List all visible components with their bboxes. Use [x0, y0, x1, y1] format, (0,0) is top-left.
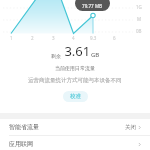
staticText: 1G: [136, 4, 142, 10]
button[interactable]: 校准: [63, 91, 88, 102]
staticText: M: [137, 16, 142, 22]
staticText: 2: [31, 35, 34, 41]
staticText: 3: [52, 35, 55, 41]
staticText: 剩余: [51, 53, 61, 59]
staticText: 1: [10, 35, 13, 41]
staticText: 9.3: [90, 35, 97, 41]
staticText: 运营商流量统计方式可能与本设备不同: [28, 77, 122, 84]
button[interactable]: 应用联网: [0, 136, 150, 150]
staticText: 智能省流量: [9, 123, 39, 131]
staticText: 79.77 MB: [82, 3, 103, 9]
other: 智能省流量: [136, 124, 143, 131]
staticText: GB: [91, 51, 100, 59]
staticText: 应用联网: [9, 140, 33, 148]
staticText: 6: [113, 35, 116, 41]
other: 应用联网: [136, 141, 143, 148]
staticText: 4: [72, 35, 75, 41]
staticText: 当前使用日常流量: [55, 65, 95, 71]
staticText: 0B: [136, 28, 142, 34]
staticText: 校准: [70, 93, 81, 100]
staticText: 关闭: [125, 124, 136, 131]
staticText: 3.61: [61, 42, 91, 60]
button[interactable]: 智能省流量: [0, 119, 150, 135]
